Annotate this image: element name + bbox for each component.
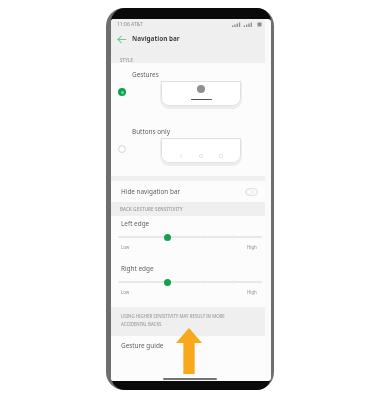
button[interactable]: Buttons only — [111, 120, 265, 177]
staticText: 11:06 AT&T — [117, 21, 143, 28]
button[interactable]: Gesture guide — [111, 336, 265, 381]
staticText: High — [247, 244, 257, 250]
staticText: Low — [121, 244, 130, 250]
staticText: Navigation bar — [132, 34, 180, 43]
staticText: Gestures — [132, 70, 159, 79]
button[interactable]: Left edge — [164, 234, 171, 241]
button[interactable]: Gestures — [111, 63, 265, 120]
staticText: Low — [121, 289, 130, 295]
staticText: Buttons only — [132, 127, 170, 136]
staticText: STYLE — [120, 57, 134, 63]
staticText: BACK GESTURE SENSITIVITY — [120, 206, 183, 212]
staticText: Gesture guide — [121, 341, 164, 350]
staticText: High — [247, 289, 257, 295]
staticText: Hide navigation bar — [121, 187, 181, 196]
staticText: Left edge — [121, 219, 150, 228]
staticText: Right edge — [121, 264, 154, 273]
button[interactable]: Hide navigation bar — [111, 181, 265, 202]
button[interactable]: Right edge — [164, 279, 171, 286]
button[interactable]: Navigate up — [115, 33, 128, 46]
staticText: USING HIGHER SENSITIVITY MAY RESULT IN M… — [121, 313, 225, 327]
